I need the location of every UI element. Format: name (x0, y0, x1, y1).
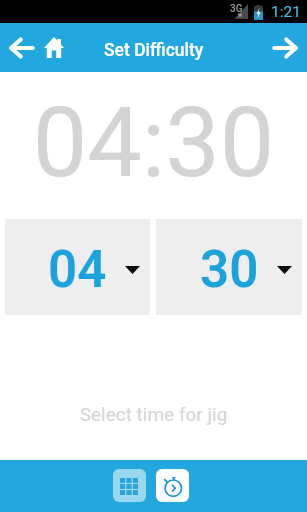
staticText: 3G (230, 3, 243, 15)
staticText: 04:30 (0, 86, 307, 200)
button[interactable]: Next (262, 23, 307, 72)
button[interactable]: Grid (113, 469, 146, 502)
button[interactable]: 30 (156, 219, 302, 315)
staticText: 1:21 (271, 3, 301, 21)
staticText: Select time for jig (0, 403, 307, 425)
button[interactable]: Back (0, 23, 43, 72)
button[interactable]: 04 (5, 219, 150, 315)
staticText: 30 (200, 240, 259, 300)
button[interactable]: Home (43, 23, 64, 72)
button[interactable]: Timer (156, 469, 189, 502)
staticText: 04 (48, 240, 107, 300)
staticText: Set Difficulty (104, 40, 204, 61)
